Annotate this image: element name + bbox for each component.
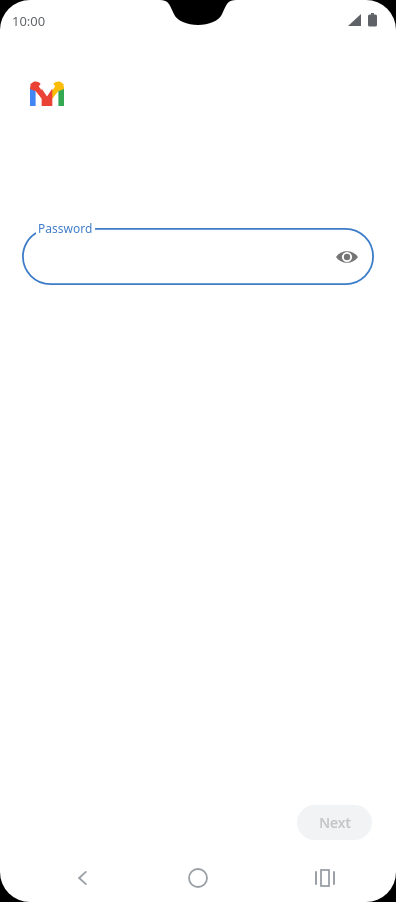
button[interactable]: Home: [174, 854, 222, 902]
button[interactable]: Back: [60, 854, 106, 902]
staticText: Password: [38, 220, 93, 236]
staticText: Next: [319, 813, 351, 832]
button[interactable]: Password: [22, 228, 374, 285]
button[interactable]: Show password: [330, 240, 364, 274]
button[interactable]: Next: [297, 805, 372, 840]
button[interactable]: Recent apps: [302, 854, 348, 902]
staticText: 10:00: [12, 12, 46, 30]
